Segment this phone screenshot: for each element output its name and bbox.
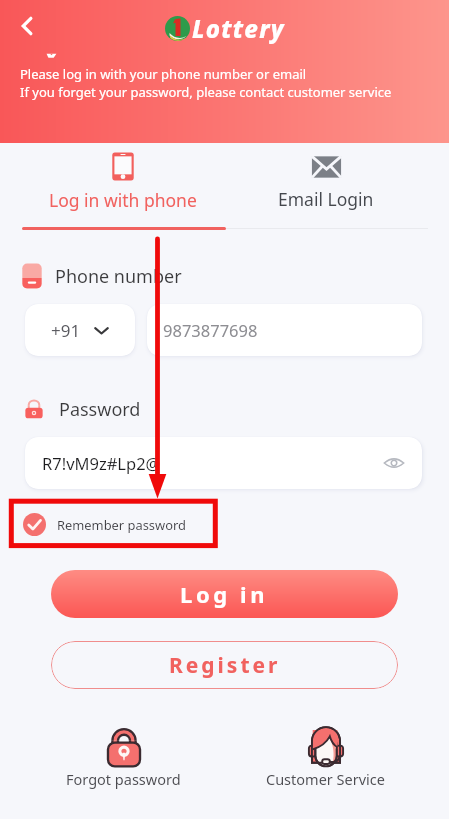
staticText: R7!vM9z#Lp2@ bbox=[42, 452, 161, 474]
button[interactable]: Customer Service bbox=[224, 725, 427, 789]
button[interactable]: R7!vM9z#Lp2@ bbox=[25, 437, 422, 489]
staticText: Forgot password bbox=[66, 769, 181, 789]
staticText: Phone number bbox=[55, 264, 182, 289]
button[interactable]: Log in bbox=[51, 570, 398, 618]
staticText: Email Login bbox=[278, 187, 374, 211]
staticText: Lottery bbox=[192, 12, 285, 45]
staticText: If you forget your password, please cont… bbox=[20, 83, 392, 101]
button[interactable]: Show password bbox=[378, 447, 410, 479]
button[interactable]: Remember password bbox=[23, 513, 186, 536]
staticText: Register bbox=[169, 651, 281, 680]
staticText: Customer Service bbox=[266, 769, 385, 789]
button[interactable]: Email Login bbox=[224, 143, 427, 233]
button[interactable]: Log in with phone bbox=[22, 143, 224, 233]
staticText: 9873877698 bbox=[163, 319, 258, 341]
staticText: Please log in with your phone number or … bbox=[20, 65, 307, 83]
button[interactable]: Forgot password bbox=[22, 725, 224, 789]
staticText: Remember password bbox=[57, 516, 186, 534]
button[interactable]: Back bbox=[10, 8, 46, 44]
staticText: Log in with phone bbox=[49, 188, 197, 212]
button[interactable]: Register bbox=[51, 641, 398, 689]
button[interactable]: +91 bbox=[25, 304, 135, 356]
staticText: +91 bbox=[51, 319, 81, 342]
staticText: Password bbox=[59, 397, 141, 422]
staticText: Log in bbox=[180, 579, 269, 609]
button[interactable]: 9873877698 bbox=[147, 304, 422, 356]
